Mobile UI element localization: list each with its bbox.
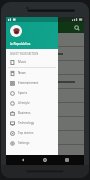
button[interactable]: Top stories (6, 128, 58, 138)
button[interactable]: Lifestyle (6, 98, 58, 108)
button[interactable] (10, 25, 22, 37)
button[interactable] (6, 89, 84, 103)
button[interactable] (6, 117, 84, 131)
staticText: Lifestyle (18, 101, 30, 105)
button[interactable]: Back (18, 155, 28, 165)
button[interactable] (6, 75, 84, 89)
button[interactable] (6, 33, 84, 47)
staticText: News (18, 71, 26, 75)
staticText: Technology (18, 121, 35, 125)
button[interactable]: Settings (6, 138, 58, 148)
staticText: Music (18, 60, 27, 64)
staticText: Top stories (18, 131, 34, 135)
button[interactable]: Technology (6, 118, 58, 128)
button[interactable]: Home (40, 155, 50, 165)
button[interactable] (6, 61, 84, 75)
staticText: Entertainment (18, 81, 39, 85)
staticText: la Repubblica (10, 42, 31, 46)
staticText: SELECT YOUR SECTION (10, 52, 39, 56)
button[interactable]: News (6, 68, 58, 78)
button[interactable]: Entertainment (6, 78, 58, 88)
button[interactable] (6, 103, 84, 117)
button[interactable]: Music (6, 57, 58, 67)
button[interactable]: la Repubblica (6, 17, 58, 49)
button[interactable] (6, 47, 84, 61)
staticText: Sports (18, 91, 28, 95)
staticText: Settings (18, 141, 30, 145)
button[interactable] (6, 131, 84, 145)
staticText: Business (18, 111, 31, 115)
button[interactable]: Recents (62, 155, 72, 165)
button[interactable]: Search (72, 23, 81, 32)
button[interactable]: Sports (6, 88, 58, 98)
button[interactable]: Business (6, 108, 58, 118)
